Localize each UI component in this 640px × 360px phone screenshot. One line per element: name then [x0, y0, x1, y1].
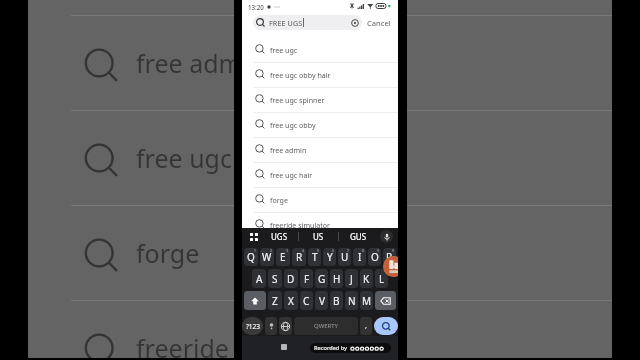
button[interactable]: O: [368, 248, 381, 266]
button[interactable]: P: [383, 248, 396, 266]
staticText: I: [358, 250, 362, 264]
staticText: F: [304, 272, 310, 286]
staticText: S: [272, 272, 278, 286]
button[interactable]: Shift: [244, 291, 266, 310]
staticText: free ugc spinner: [270, 95, 325, 105]
staticText: W: [262, 250, 272, 264]
button[interactable]: Backspace: [375, 291, 396, 310]
button[interactable]: E: [276, 248, 290, 266]
button[interactable]: UGS: [260, 228, 298, 245]
staticText: forge: [136, 236, 200, 270]
button[interactable]: QWERTY: [294, 317, 358, 335]
staticText: E: [280, 250, 286, 264]
staticText: FREE UGS: [269, 18, 303, 28]
button[interactable]: G: [315, 269, 328, 288]
button[interactable]: A: [252, 269, 266, 288]
staticText: V: [319, 294, 325, 308]
button[interactable]: Cancel: [367, 15, 391, 30]
button[interactable]: S: [268, 269, 282, 288]
button[interactable]: B: [330, 291, 343, 310]
staticText: 9: [377, 248, 380, 253]
button[interactable]: H: [330, 269, 343, 288]
staticText: 4: [302, 248, 305, 253]
button[interactable]: Clear search: [349, 17, 360, 28]
button[interactable]: Change language: [279, 317, 292, 335]
button[interactable]: F: [300, 269, 313, 288]
staticText: B: [333, 294, 340, 308]
button[interactable]: M: [360, 291, 373, 310]
button[interactable]: freeride simulator: [242, 212, 398, 237]
staticText: 8: [362, 248, 365, 253]
button[interactable]: Search: [374, 317, 398, 335]
staticText: 6: [332, 248, 335, 253]
button[interactable]: free admin: [242, 137, 398, 162]
button[interactable]: U: [338, 248, 351, 266]
button[interactable]: GUS: [339, 228, 378, 245]
staticText: A: [256, 272, 263, 286]
staticText: free ugc obby hair: [270, 70, 331, 80]
staticText: 2: [270, 248, 273, 253]
button[interactable]: free admin: [28, 15, 612, 110]
button[interactable]: free ugc obby: [242, 112, 398, 137]
button[interactable]: free ugc hair: [242, 162, 398, 187]
button[interactable]: I: [353, 248, 366, 266]
button[interactable]: free ugc obby hair: [242, 62, 398, 87]
button[interactable]: forge: [28, 205, 612, 300]
staticText: Recorded by: [314, 344, 348, 352]
button[interactable]: N: [345, 291, 358, 310]
button[interactable]: D: [284, 269, 298, 288]
staticText: QWERTY: [314, 322, 339, 330]
button[interactable]: free ugc spinner: [242, 87, 398, 112]
button[interactable]: ?123: [242, 317, 263, 335]
button[interactable]: FREE UGS: [253, 15, 362, 30]
button[interactable]: J: [345, 269, 358, 288]
button[interactable]: Y: [323, 248, 336, 266]
button[interactable]: Keyboard menu: [248, 231, 260, 243]
staticText: Cancel: [367, 18, 391, 28]
staticText: US: [313, 231, 324, 242]
staticText: N: [348, 294, 356, 308]
staticText: M: [362, 294, 372, 308]
button[interactable]: free ugc: [242, 37, 398, 62]
staticText: free admin: [136, 46, 264, 80]
button[interactable]: T: [308, 248, 321, 266]
staticText: X: [288, 294, 294, 308]
staticText: UGS: [271, 231, 288, 242]
staticText: T: [312, 250, 318, 264]
staticText: freeride simulator: [136, 331, 348, 358]
button[interactable]: free ugc hair: [28, 110, 612, 205]
button[interactable]: freeride simulator: [28, 300, 612, 358]
staticText: 7: [347, 248, 350, 253]
staticText: J: [350, 272, 353, 286]
staticText: free ugc: [270, 45, 298, 55]
staticText: Y: [327, 250, 333, 264]
staticText: L: [379, 272, 385, 286]
button[interactable]: forge: [242, 187, 398, 212]
staticText: ,: [365, 321, 367, 331]
staticText: C: [303, 294, 310, 308]
button[interactable]: ,: [360, 317, 372, 335]
button[interactable]: Q: [244, 248, 258, 266]
staticText: free ugc hair: [136, 141, 285, 175]
button[interactable]: W: [260, 248, 274, 266]
button[interactable]: X: [284, 291, 298, 310]
button[interactable]: US: [299, 228, 338, 245]
staticText: free ugc obby: [270, 120, 316, 130]
button[interactable]: L: [375, 269, 388, 288]
button[interactable]: R: [292, 248, 306, 266]
button[interactable]: Home: [281, 344, 287, 350]
button[interactable]: Z: [268, 291, 282, 310]
staticText: free admin: [270, 145, 307, 155]
staticText: 5: [317, 248, 320, 253]
staticText: ?123: [246, 322, 260, 331]
button[interactable]: Voice input: [378, 228, 395, 245]
button[interactable]: Mobizen recorder: [383, 256, 398, 277]
button[interactable]: C: [300, 291, 313, 310]
staticText: U: [341, 250, 349, 264]
staticText: GUS: [350, 231, 367, 242]
button[interactable]: Emoji: [265, 317, 277, 335]
button[interactable]: K: [360, 269, 373, 288]
staticText: O: [371, 250, 379, 264]
button[interactable]: V: [315, 291, 328, 310]
staticText: freeride simulator: [270, 220, 331, 230]
